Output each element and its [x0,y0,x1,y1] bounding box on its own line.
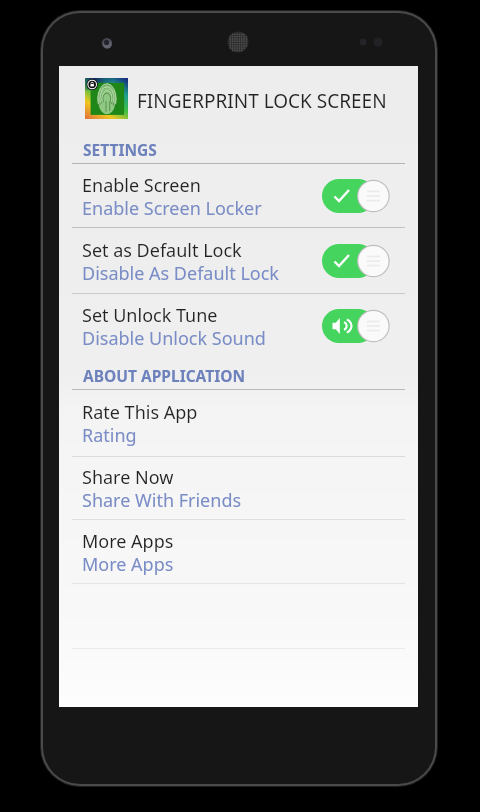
button[interactable]: Set as Default Lock [59,228,418,293]
staticText: Set as Default Lock [82,238,242,263]
staticText: Disable Unlock Sound [82,326,266,351]
button[interactable]: Toggle setting [322,179,390,213]
staticText: ABOUT APPLICATION [83,365,246,386]
button[interactable]: Share Now [59,457,418,519]
staticText: Rating [82,423,137,448]
staticText: Enable Screen Locker [82,196,262,221]
button[interactable]: Rate This App [59,390,418,456]
staticText: Enable Screen [82,173,201,198]
button[interactable]: Enable Screen [59,164,418,227]
button[interactable]: Toggle setting [322,244,390,278]
staticText: Share Now [82,465,174,490]
staticText: Disable As Default Lock [82,261,279,286]
staticText: FINGERPRINT LOCK SCREEN [137,88,387,114]
button[interactable]: Toggle sound [322,309,390,343]
staticText: More Apps [82,552,174,577]
button[interactable]: Set Unlock Tune [59,294,418,357]
staticText: SETTINGS [83,139,157,160]
staticText: Set Unlock Tune [82,303,218,328]
button[interactable]: More Apps [59,520,418,583]
staticText: Rate This App [82,400,198,425]
staticText: More Apps [82,529,174,554]
staticText: Share With Friends [82,488,242,513]
